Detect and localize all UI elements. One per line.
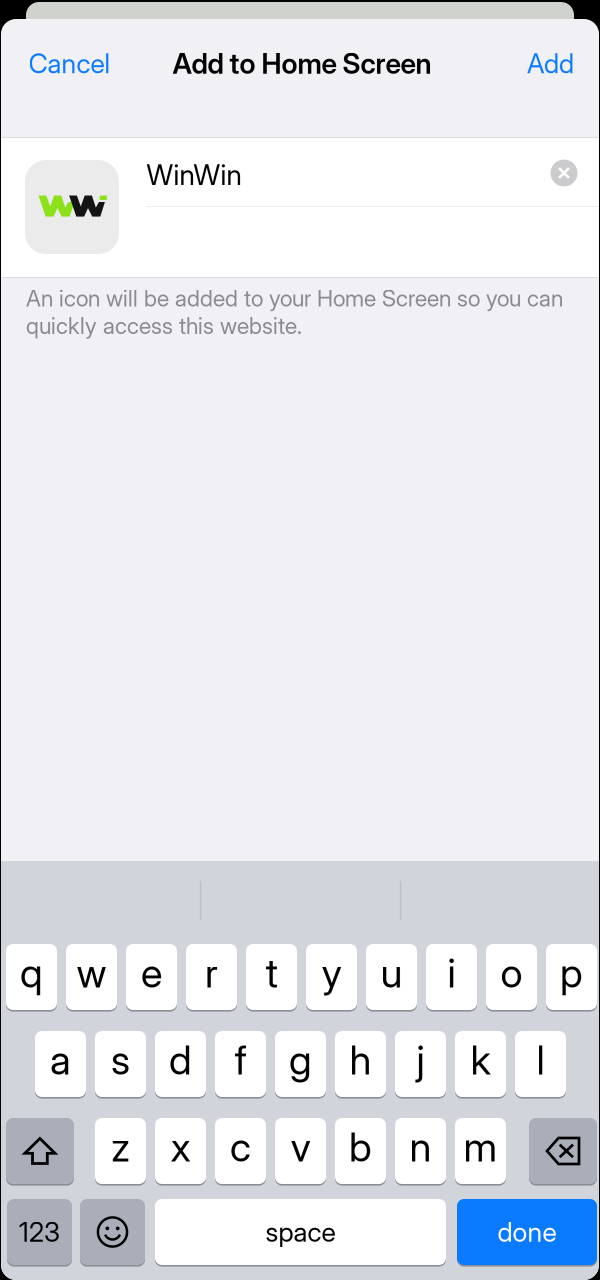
button[interactable]: p — [546, 943, 597, 1011]
button[interactable]: f — [215, 1030, 266, 1098]
staticText: An icon will be added to your Home Scree… — [26, 285, 563, 339]
button[interactable]: j — [395, 1030, 446, 1098]
staticText: 123 — [19, 1216, 60, 1248]
staticText: q — [20, 949, 43, 997]
button[interactable]: k — [455, 1030, 506, 1098]
staticText: t — [265, 949, 277, 997]
button[interactable]: Clear text — [542, 151, 586, 195]
button[interactable]: Emoji keyboard — [80, 1198, 145, 1266]
button[interactable]: n — [395, 1117, 446, 1185]
staticText: o — [500, 949, 522, 997]
button[interactable]: w — [66, 943, 117, 1011]
staticText: g — [289, 1036, 312, 1084]
button[interactable]: i — [426, 943, 477, 1011]
staticText: y — [321, 949, 341, 997]
staticText: u — [380, 949, 402, 997]
staticText: j — [416, 1036, 424, 1084]
staticText: Cancel — [28, 47, 109, 80]
button[interactable]: a — [35, 1030, 86, 1098]
button[interactable]: u — [366, 943, 417, 1011]
staticText: v — [290, 1123, 310, 1171]
button[interactable]: t — [246, 943, 297, 1011]
button[interactable]: s — [95, 1030, 146, 1098]
button[interactable]: d — [155, 1030, 206, 1098]
staticText: a — [50, 1036, 71, 1084]
staticText: d — [169, 1036, 192, 1084]
button[interactable]: done — [457, 1198, 597, 1266]
staticText: h — [349, 1036, 371, 1084]
button[interactable]: z — [95, 1117, 146, 1185]
staticText: i — [447, 949, 455, 997]
staticText: z — [111, 1123, 130, 1171]
staticText: Add — [527, 47, 574, 80]
button[interactable]: l — [515, 1030, 566, 1098]
staticText: x — [170, 1123, 190, 1171]
button[interactable]: b — [335, 1117, 386, 1185]
button[interactable]: Add — [513, 31, 588, 96]
button[interactable]: Delete — [529, 1117, 597, 1185]
staticText: c — [230, 1123, 251, 1171]
staticText: space — [265, 1216, 335, 1248]
staticText: done — [497, 1216, 556, 1248]
staticText: n — [409, 1123, 431, 1171]
button[interactable]: m — [455, 1117, 506, 1185]
staticText: Add to Home Screen — [172, 47, 431, 80]
button[interactable]: c — [215, 1117, 266, 1185]
button[interactable]: Shift — [6, 1117, 74, 1185]
button[interactable]: q — [6, 943, 57, 1011]
staticText: s — [111, 1036, 130, 1084]
button[interactable]: h — [335, 1030, 386, 1098]
button[interactable]: space — [155, 1198, 446, 1266]
button[interactable]: v — [275, 1117, 326, 1185]
staticText: f — [234, 1036, 246, 1084]
button[interactable]: g — [275, 1030, 326, 1098]
staticText: k — [470, 1036, 490, 1084]
staticText: m — [463, 1123, 497, 1171]
button[interactable]: 123 — [7, 1198, 72, 1266]
button[interactable]: x — [155, 1117, 206, 1185]
staticText: b — [349, 1123, 372, 1171]
button[interactable]: o — [486, 943, 537, 1011]
staticText: p — [560, 949, 583, 997]
button[interactable]: y — [306, 943, 357, 1011]
staticText: w — [76, 949, 106, 997]
staticText: l — [536, 1036, 544, 1084]
staticText: WinWin — [146, 158, 241, 192]
button[interactable]: Cancel — [14, 31, 123, 96]
button[interactable]: r — [186, 943, 237, 1011]
staticText: r — [205, 949, 218, 997]
staticText: e — [141, 949, 162, 997]
button[interactable]: e — [126, 943, 177, 1011]
